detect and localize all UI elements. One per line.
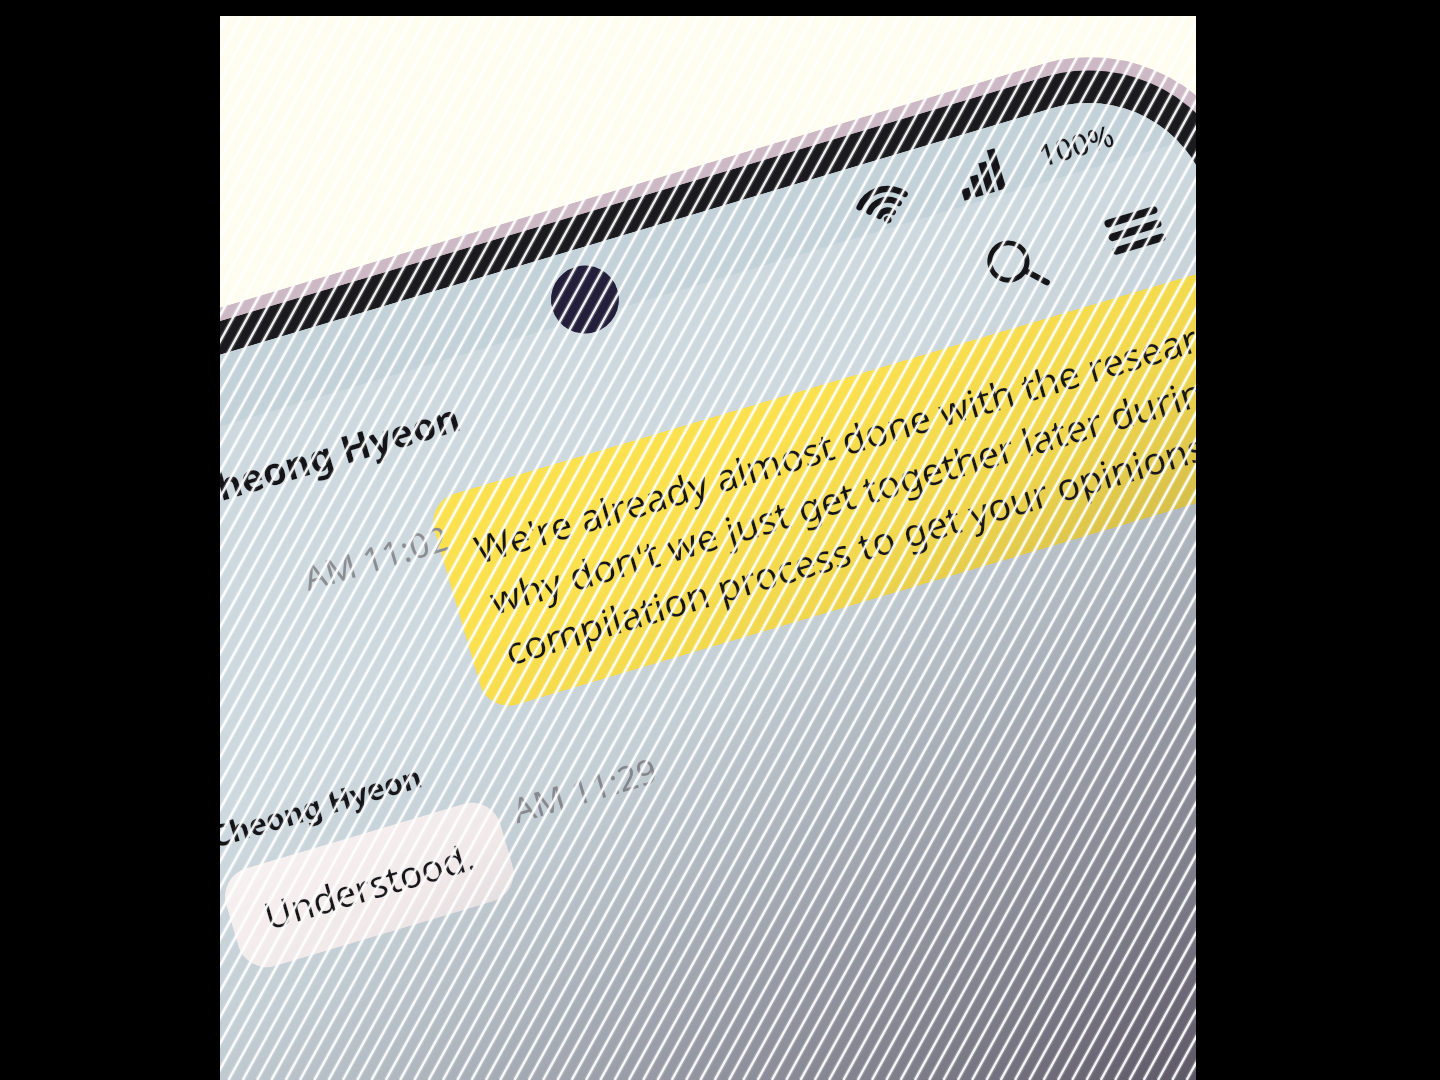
staticText: Yu Cheong Hyeon <box>220 755 427 870</box>
staticText: 100% <box>1033 114 1119 176</box>
staticText: AM 11:02 <box>298 514 454 601</box>
button[interactable]: Menu <box>1081 177 1188 284</box>
button[interactable]: We're already almost done with the resea… <box>426 265 1196 713</box>
staticText: Kim Cheong Hyeon <box>220 390 466 542</box>
staticText: AM 11:29 <box>507 747 663 833</box>
button[interactable]: Search <box>963 212 1070 319</box>
button[interactable]: Understood. <box>220 795 521 974</box>
staticText: We're already almost done with the resea… <box>468 306 1196 677</box>
staticText: Understood. <box>258 830 481 940</box>
